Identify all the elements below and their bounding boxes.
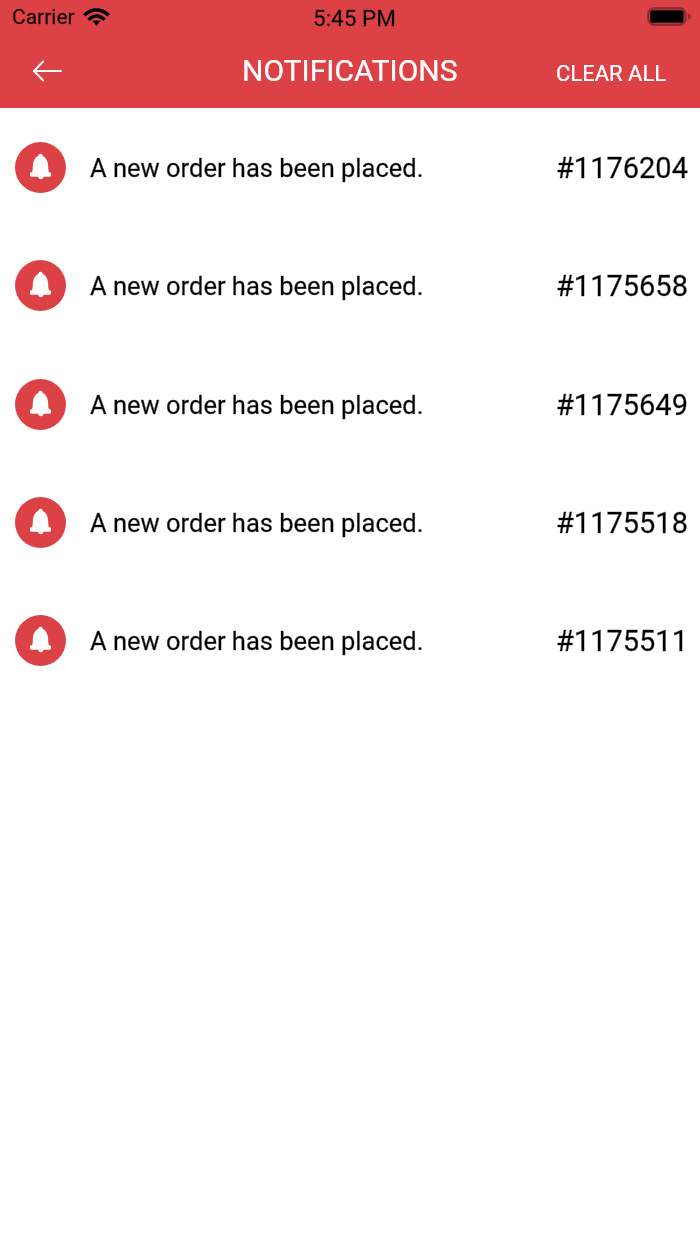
button[interactable]: A new order has been placed.: [0, 227, 700, 345]
staticText: A new order has been placed.: [90, 390, 424, 420]
staticText: #1175518: [556, 506, 688, 540]
other: Battery full: [647, 7, 692, 26]
staticText: #1175511: [556, 624, 688, 658]
staticText: Carrier: [12, 5, 75, 30]
staticText: #1175511: [556, 624, 688, 658]
staticText: A new order has been placed.: [90, 390, 424, 420]
button[interactable]: Back: [0, 40, 68, 108]
staticText: A new order has been placed.: [90, 153, 424, 183]
button[interactable]: A new order has been placed.: [0, 109, 700, 227]
staticText: A new order has been placed.: [90, 271, 424, 301]
staticText: #1176204: [556, 151, 688, 185]
staticText: CLEAR ALL: [556, 61, 667, 87]
staticText: #1175518: [556, 506, 688, 540]
staticText: #1175649: [556, 388, 688, 422]
staticText: A new order has been placed.: [90, 271, 424, 301]
staticText: A new order has been placed.: [90, 508, 424, 538]
button[interactable]: CLEAR ALL: [534, 40, 700, 108]
other: Wi-Fi signal: [85, 8, 108, 26]
staticText: #1176204: [556, 151, 688, 185]
button[interactable]: A new order has been placed.: [0, 464, 700, 582]
button[interactable]: A new order has been placed.: [0, 582, 700, 700]
staticText: #1175658: [556, 269, 688, 303]
staticText: A new order has been placed.: [90, 153, 424, 183]
staticText: NOTIFICATIONS: [242, 53, 458, 88]
staticText: 5:45 PM: [313, 5, 396, 31]
staticText: A new order has been placed.: [90, 626, 424, 656]
staticText: 5:45 PM: [313, 5, 396, 31]
staticText: Carrier: [12, 5, 75, 30]
staticText: #1175649: [556, 388, 688, 422]
staticText: A new order has been placed.: [90, 626, 424, 656]
staticText: #1175658: [556, 269, 688, 303]
button[interactable]: A new order has been placed.: [0, 346, 700, 464]
staticText: A new order has been placed.: [90, 508, 424, 538]
